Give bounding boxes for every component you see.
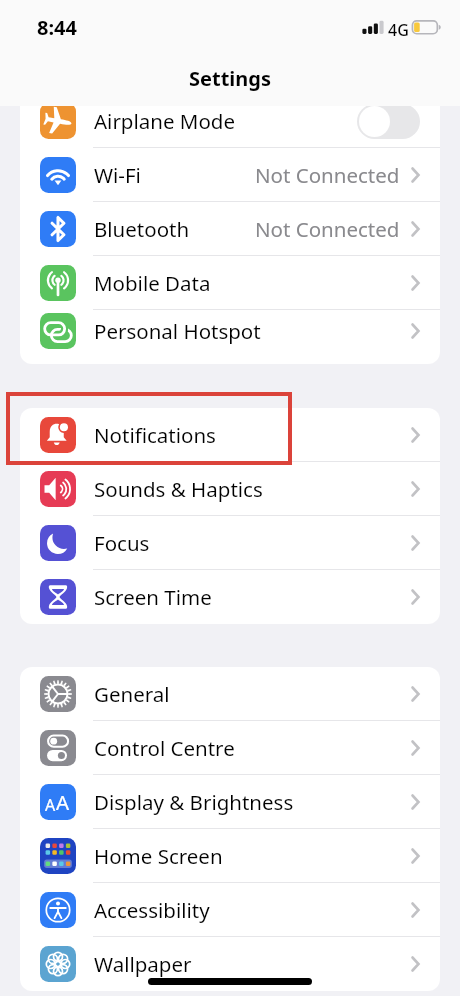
- staticText: Wallpaper: [94, 950, 192, 978]
- staticText: Settings: [189, 65, 271, 92]
- staticText: Display & Brightness: [94, 788, 294, 816]
- staticText: 4G: [388, 19, 409, 41]
- staticText: Airplane Mode: [94, 107, 235, 135]
- staticText: Bluetooth: [94, 215, 190, 243]
- staticText: Sounds & Haptics: [94, 475, 263, 503]
- button[interactable]: Focus: [20, 516, 440, 570]
- button[interactable]: Screen Time: [20, 570, 440, 624]
- button[interactable]: Mobile Data: [20, 256, 440, 310]
- button[interactable]: Home Screen: [20, 829, 440, 883]
- button[interactable]: Accessibility: [20, 883, 440, 937]
- button[interactable]: General: [20, 667, 440, 721]
- staticText: A: [45, 794, 56, 816]
- staticText: A: [56, 788, 70, 816]
- button[interactable]: A: [20, 775, 440, 829]
- staticText: Control Centre: [94, 734, 235, 762]
- button[interactable]: Sounds & Haptics: [20, 462, 440, 516]
- button[interactable]: Wallpaper: [20, 937, 440, 991]
- button[interactable]: Bluetooth: [20, 202, 440, 256]
- staticText: Screen Time: [94, 583, 212, 611]
- staticText: Mobile Data: [94, 269, 211, 297]
- button[interactable]: Control Centre: [20, 721, 440, 775]
- button[interactable]: Airplane Mode: [20, 106, 440, 148]
- staticText: Notifications: [94, 421, 216, 449]
- button[interactable]: Wi-Fi: [20, 148, 440, 202]
- staticText: 8:44: [37, 14, 77, 41]
- staticText: Not Connected: [255, 161, 400, 189]
- staticText: General: [94, 680, 170, 708]
- staticText: Wi-Fi: [94, 161, 141, 189]
- button[interactable]: Personal Hotspot: [20, 310, 440, 352]
- staticText: Focus: [94, 529, 150, 557]
- button[interactable]: Notifications: [20, 408, 440, 462]
- staticText: Home Screen: [94, 842, 223, 870]
- staticText: Accessibility: [94, 896, 210, 924]
- staticText: Not Connected: [255, 215, 400, 243]
- staticText: Personal Hotspot: [94, 317, 261, 345]
